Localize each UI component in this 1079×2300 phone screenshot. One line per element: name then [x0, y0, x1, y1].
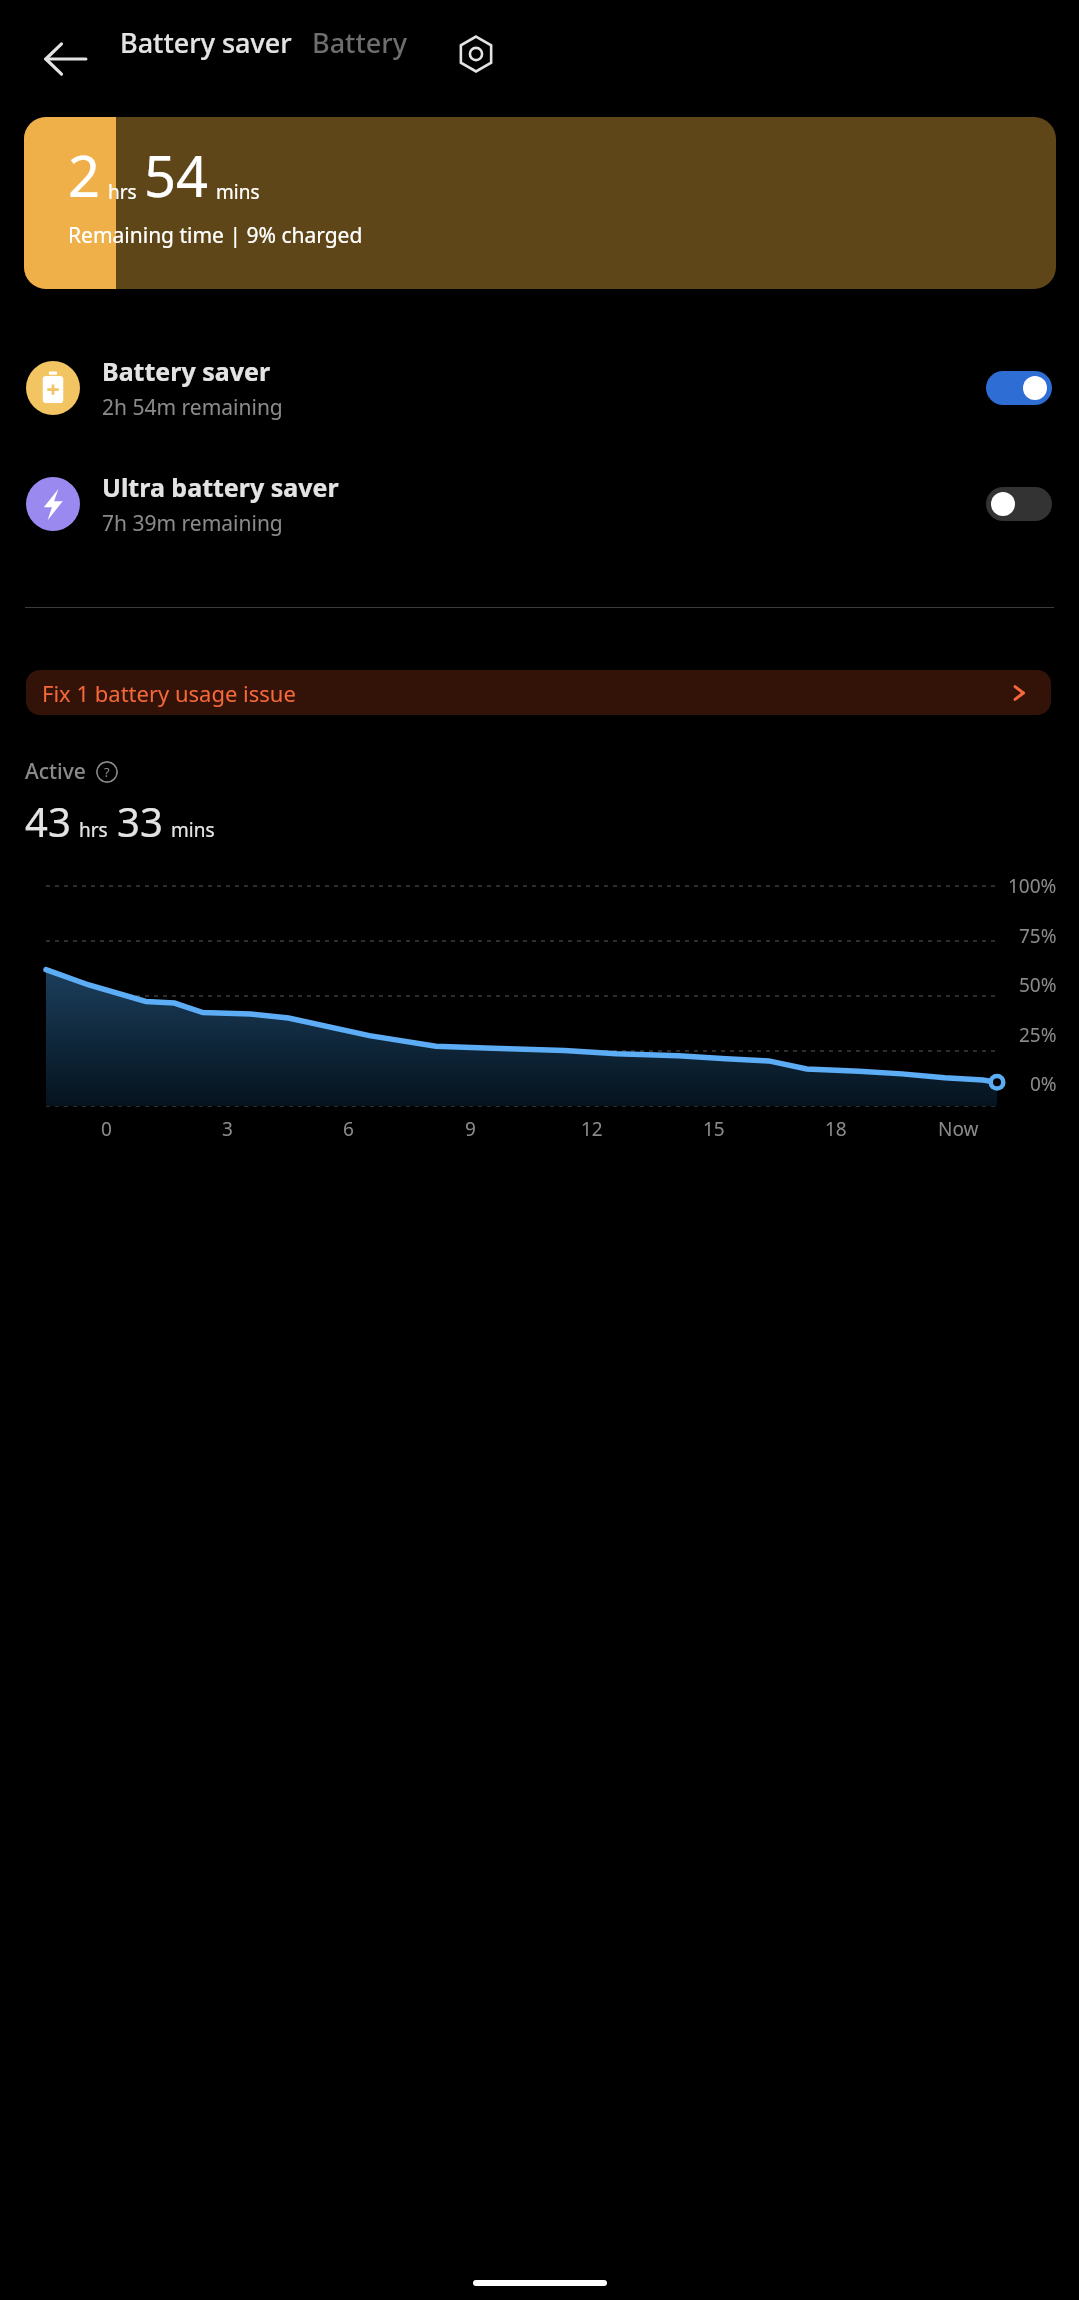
staticText: 12	[581, 1116, 603, 1142]
staticText: 7h 39m remaining	[102, 509, 283, 538]
staticText: 43	[25, 794, 71, 848]
staticText: 50%	[1019, 972, 1057, 998]
button[interactable]: Fix 1 battery usage issue	[26, 670, 1051, 715]
button[interactable]: Battery saver	[120, 24, 292, 61]
button[interactable]: Ultra battery saver	[0, 461, 1079, 547]
staticText: 9	[465, 1116, 476, 1142]
staticText: Battery saver	[102, 354, 271, 388]
staticText: Active	[25, 757, 86, 786]
staticText: 2	[68, 137, 101, 213]
staticText: 3	[222, 1116, 233, 1142]
staticText: 15	[703, 1116, 725, 1142]
staticText: Ultra battery saver	[102, 470, 339, 504]
staticText: Battery saver	[120, 24, 292, 61]
staticText: 0	[101, 1116, 112, 1142]
staticText: 2h 54m remaining	[102, 393, 283, 422]
staticText: mins	[216, 179, 260, 205]
staticText: hrs	[79, 817, 108, 843]
staticText: Now	[938, 1116, 979, 1142]
staticText: Fix 1 battery usage issue	[42, 678, 296, 708]
staticText: Remaining time | 9% charged	[68, 221, 363, 250]
staticText: 0%	[1030, 1071, 1057, 1097]
button[interactable]: Battery saver	[0, 345, 1079, 431]
button[interactable]	[986, 487, 1052, 521]
staticText: 25%	[1019, 1022, 1057, 1048]
staticText: 6	[343, 1116, 354, 1142]
staticText: 18	[825, 1116, 847, 1142]
button[interactable]: Settings	[448, 26, 504, 82]
button[interactable]: Battery	[312, 24, 407, 61]
staticText: 75%	[1019, 923, 1057, 949]
button[interactable]	[986, 371, 1052, 405]
button[interactable]: Back	[36, 30, 94, 88]
staticText: hrs	[108, 179, 137, 205]
staticText: 54	[144, 137, 209, 213]
staticText: Battery	[312, 24, 407, 61]
staticText: ?	[104, 763, 110, 781]
button[interactable]: 2	[24, 117, 1056, 289]
staticText: 33	[117, 794, 163, 848]
button[interactable]: Help	[96, 761, 118, 783]
staticText: mins	[171, 817, 215, 843]
staticText: 100%	[1008, 873, 1057, 899]
